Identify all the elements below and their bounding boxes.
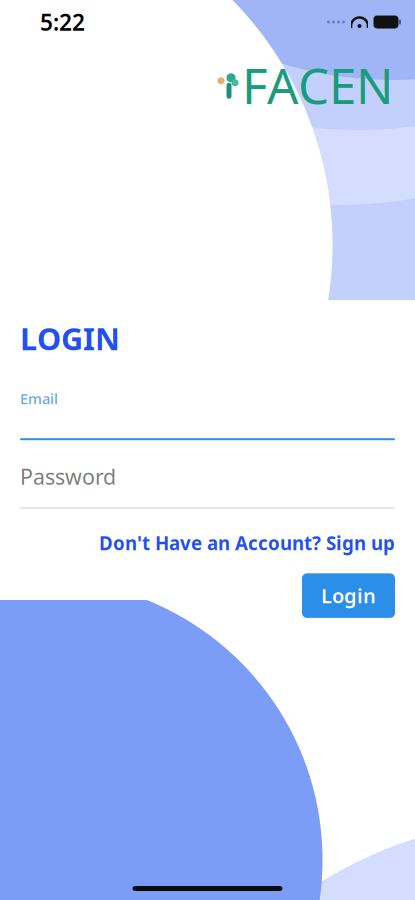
staticText: Login — [321, 582, 376, 609]
staticText: Don't Have an Account? Sign up — [99, 530, 395, 555]
staticText: Password — [20, 462, 116, 490]
staticText: Email — [20, 389, 58, 408]
staticText: LOGIN — [20, 318, 120, 359]
staticText: FACEN — [242, 52, 393, 117]
button[interactable]: Login — [302, 573, 395, 618]
staticText: 5:22 — [40, 7, 85, 37]
button[interactable]: Don't Have an Account? Sign up — [99, 530, 395, 555]
